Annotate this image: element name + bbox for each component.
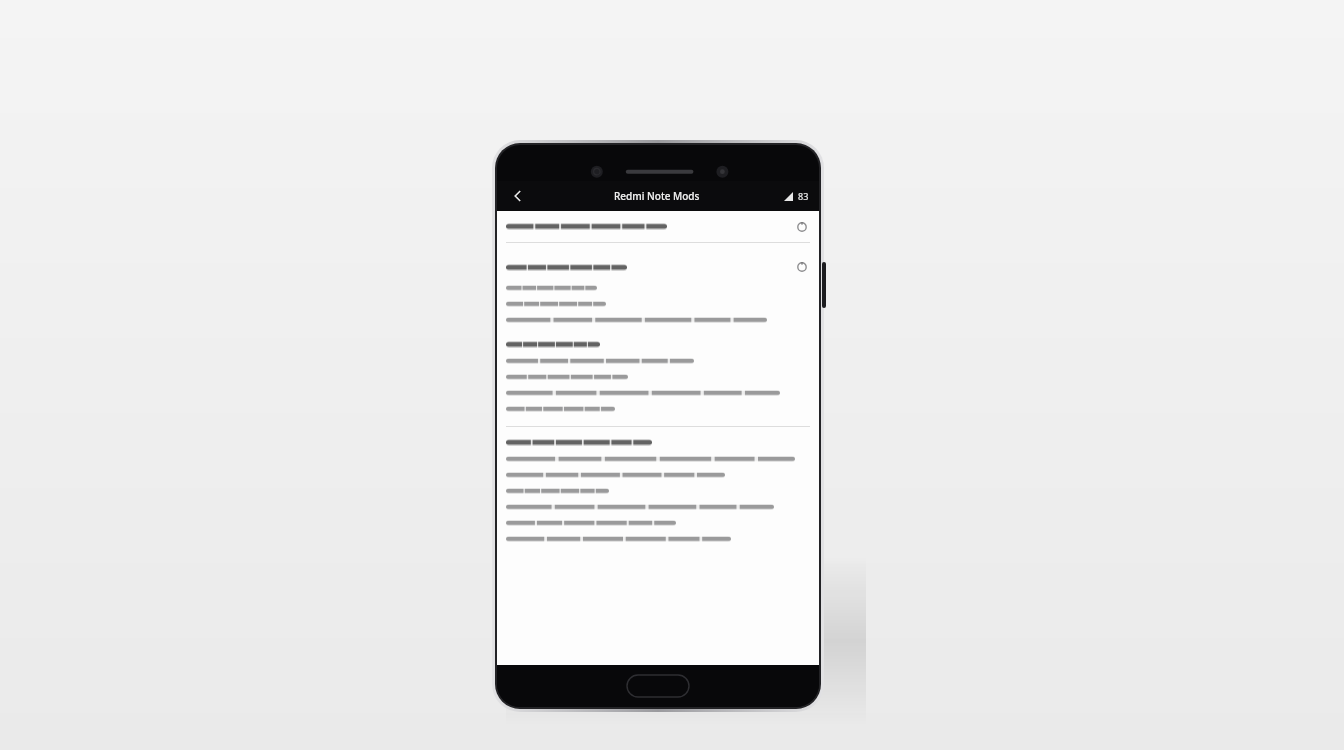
- button[interactable]: Search: [794, 259, 810, 275]
- button[interactable]: More options: [794, 219, 810, 235]
- button[interactable]: Home: [627, 675, 689, 697]
- staticText: Redmi Note Mods: [614, 189, 700, 203]
- button[interactable]: Power button: [822, 262, 826, 308]
- button[interactable]: Search: [506, 259, 810, 275]
- button[interactable]: Back: [507, 185, 529, 207]
- button[interactable]: [506, 439, 810, 446]
- staticText: 83: [798, 190, 809, 202]
- button[interactable]: More options: [497, 211, 819, 242]
- button[interactable]: [506, 341, 810, 348]
